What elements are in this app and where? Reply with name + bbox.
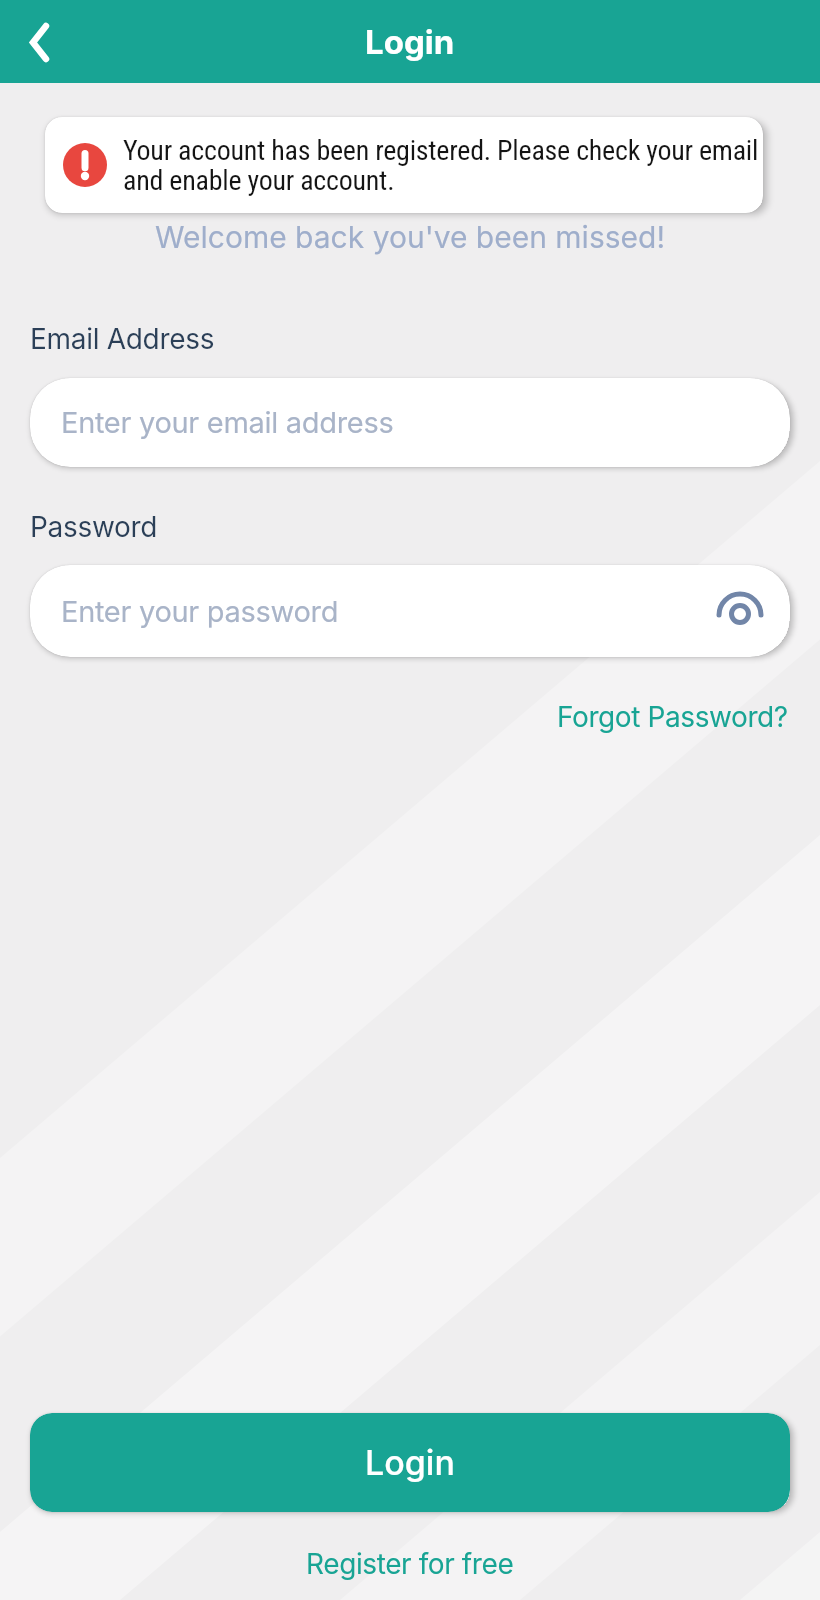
staticText: Your account has been registered. Please… [123, 134, 759, 197]
button[interactable]: Register for free [306, 1547, 514, 1581]
staticText: Login [365, 1442, 455, 1483]
staticText: Enter your password [61, 594, 339, 629]
staticText: Login [365, 22, 455, 62]
button[interactable]: Login [30, 1413, 790, 1512]
staticText: Register for free [306, 1547, 514, 1581]
staticText: Welcome back you've been missed! [0, 219, 820, 255]
button[interactable]: Enter your password [30, 565, 790, 657]
button[interactable] [714, 585, 766, 637]
staticText: Enter your email address [61, 405, 394, 440]
button[interactable]: Enter your email address [30, 378, 790, 467]
button[interactable]: Forgot Password? [557, 700, 788, 734]
staticText: Forgot Password? [557, 700, 788, 734]
button[interactable] [14, 16, 66, 68]
staticText: Password [30, 510, 158, 544]
staticText: Email Address [30, 322, 215, 356]
